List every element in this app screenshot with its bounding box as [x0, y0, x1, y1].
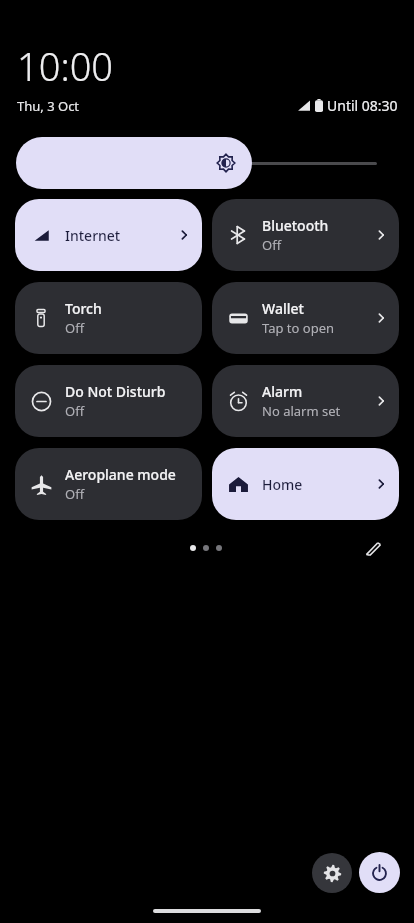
staticText: Home [262, 475, 303, 494]
button[interactable] [16, 137, 377, 189]
staticText: Internet [65, 226, 121, 245]
staticText: Off [65, 319, 85, 337]
button[interactable]: Edit tiles [359, 535, 385, 561]
button[interactable]: Power [359, 852, 400, 893]
button[interactable]: Alarm [212, 365, 399, 437]
button[interactable]: Do Not Disturb [15, 365, 202, 437]
staticText: No alarm set [262, 402, 341, 420]
staticText: Tap to open [262, 319, 335, 337]
staticText: Until 08:30 [327, 96, 398, 115]
staticText: Alarm [262, 382, 303, 401]
button[interactable]: Wallet [212, 282, 399, 354]
staticText: Off [65, 402, 85, 420]
button[interactable]: Torch [15, 282, 202, 354]
staticText: Torch [65, 299, 102, 318]
button[interactable]: Settings [312, 853, 352, 893]
staticText: Off [262, 236, 282, 254]
staticText: Do Not Disturb [65, 382, 166, 401]
button[interactable]: Internet [15, 199, 202, 271]
staticText: Thu, 3 Oct [17, 97, 80, 115]
staticText: Bluetooth [262, 216, 329, 235]
staticText: Aeroplane mode [65, 465, 176, 484]
staticText: 10:00 [17, 40, 114, 92]
button[interactable]: Aeroplane mode [15, 448, 202, 520]
staticText: Wallet [262, 299, 304, 318]
button[interactable]: Bluetooth [212, 199, 399, 271]
button[interactable]: Home [212, 448, 399, 520]
staticText: Off [65, 485, 85, 503]
